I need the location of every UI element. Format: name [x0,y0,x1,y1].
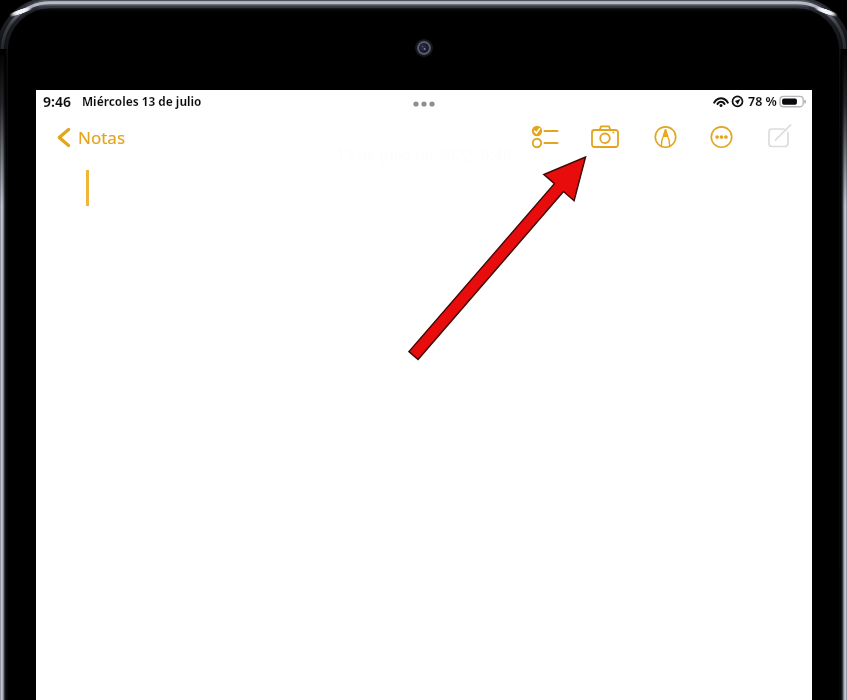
button[interactable]: Checklist [525,116,567,156]
button[interactable]: Note body [36,160,812,700]
staticText: 9:46 [43,92,71,110]
staticText: 78 % [748,93,777,110]
staticText: Miércoles 13 de julio [82,93,202,109]
button[interactable]: Notas [52,120,132,156]
button[interactable]: New note [760,116,800,156]
button[interactable]: Camera [584,116,628,156]
button[interactable]: More [702,116,742,156]
button[interactable]: 9:46 [43,92,213,110]
staticText: Notas [78,126,126,149]
button[interactable]: Markup [646,116,686,156]
